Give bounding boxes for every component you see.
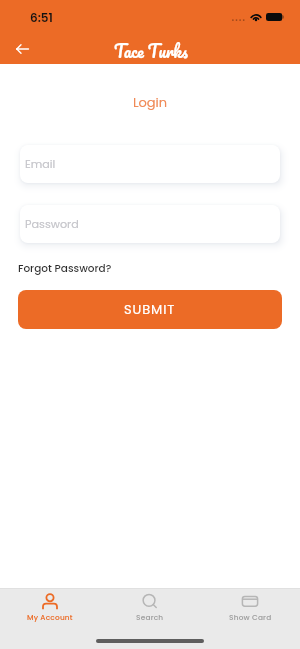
staticText: Login [0,93,300,111]
staticText: SUBMIT [124,300,176,318]
button[interactable]: SUBMIT [18,290,282,329]
button[interactable]: Forgot Password? [18,261,112,276]
button[interactable]: My Account [0,589,100,623]
button[interactable]: Show Card [200,589,300,623]
button[interactable]: Back [9,36,35,62]
button[interactable]: Email [20,145,280,183]
staticText: Show Card [229,612,272,622]
staticText: 6:51 [30,9,53,26]
staticText: My Account [27,612,73,622]
staticText: Password [25,216,79,232]
button[interactable]: Search [100,589,200,623]
staticText: Tace Turks [114,37,188,65]
staticText: Search [136,612,164,622]
button[interactable]: Password [20,205,280,243]
staticText: Email [25,156,56,172]
